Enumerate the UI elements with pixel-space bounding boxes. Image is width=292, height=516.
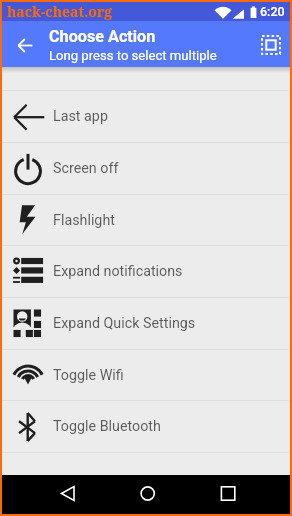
staticText: Expand notifications — [53, 263, 183, 280]
button[interactable]: Expand notifications — [2, 246, 290, 297]
staticText: Toggle Bluetooth — [53, 418, 161, 435]
button[interactable]: Expand Quick Settings — [2, 298, 290, 349]
staticText: Screen off — [53, 160, 119, 177]
button[interactable]: Toggle Bluetooth — [2, 401, 290, 452]
button[interactable]: Last app — [2, 91, 290, 142]
staticText: Flashlight — [53, 212, 115, 229]
button[interactable]: Back — [9, 29, 40, 60]
staticText: Toggle Wifi — [53, 367, 124, 384]
button[interactable]: Screen off — [2, 143, 290, 194]
staticText: Expand Quick Settings — [53, 315, 196, 332]
staticText: Long press to select multiple — [49, 48, 217, 63]
staticText: Last app — [53, 108, 108, 125]
staticText: Choose Action — [49, 27, 156, 46]
button[interactable]: Flashlight — [2, 195, 290, 245]
staticText: 6:20 — [260, 4, 285, 19]
button[interactable]: Select multiple — [255, 29, 287, 61]
button[interactable]: Toggle Wifi — [2, 350, 290, 400]
staticText: hack-cheat.org — [7, 2, 113, 21]
